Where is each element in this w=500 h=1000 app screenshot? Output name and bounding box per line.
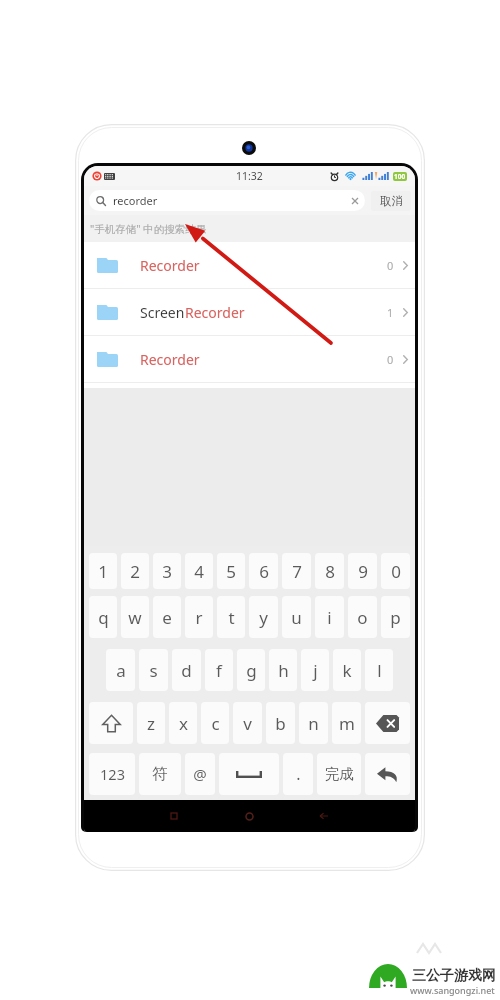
button[interactable]: y [249, 596, 278, 638]
button[interactable]: 符 [139, 753, 181, 795]
button[interactable]: @ [185, 753, 215, 795]
button[interactable]: Enter [365, 753, 410, 795]
button[interactable]: 6 [249, 553, 278, 589]
staticText: 符 [152, 764, 168, 784]
button[interactable]: 3 [153, 553, 181, 589]
button[interactable]: Recorder [84, 242, 415, 289]
button[interactable]: 1 [89, 553, 117, 589]
staticText: g [246, 659, 257, 682]
staticText: p [390, 606, 401, 629]
button[interactable]: Backspace [365, 702, 410, 744]
button[interactable]: b [266, 702, 295, 744]
staticText: y [259, 606, 268, 629]
staticText: 11:32 [236, 169, 263, 183]
button[interactable]: Clear search [348, 194, 361, 207]
button[interactable]: recorder [89, 190, 365, 211]
staticText: n [308, 712, 319, 735]
staticText: u [291, 606, 302, 629]
button[interactable]: Home [236, 803, 262, 829]
staticText: 取消 [380, 194, 403, 208]
button[interactable]: 完成 [317, 753, 361, 795]
button[interactable]: l [365, 649, 393, 691]
staticText: m [339, 712, 355, 735]
button[interactable]: s [139, 649, 168, 691]
button[interactable]: k [333, 649, 361, 691]
button[interactable]: q [89, 596, 117, 638]
button[interactable]: n [299, 702, 328, 744]
button[interactable]: Back [311, 803, 337, 829]
button[interactable]: a [106, 649, 135, 691]
button[interactable]: e [153, 596, 181, 638]
button[interactable]: 8 [315, 553, 344, 589]
staticText: x [179, 712, 188, 735]
staticText: 5 [226, 560, 236, 583]
button[interactable]: 2 [121, 553, 149, 589]
staticText: k [342, 659, 352, 682]
button[interactable]: v [233, 702, 262, 744]
button[interactable]: g [237, 649, 265, 691]
button[interactable]: 5 [217, 553, 245, 589]
staticText: 1 [98, 560, 108, 583]
staticText: 三公子游戏网 [412, 967, 496, 985]
button[interactable]: r [185, 596, 213, 638]
staticText: c [211, 712, 220, 735]
staticText: 7 [292, 560, 302, 583]
button[interactable]: 0 [381, 553, 410, 589]
staticText: h [278, 659, 289, 682]
button[interactable]: i [315, 596, 344, 638]
button[interactable]: h [269, 649, 297, 691]
button[interactable]: o [348, 596, 377, 638]
staticText: 100 [394, 172, 406, 181]
staticText: 0 [391, 560, 401, 583]
button[interactable]: . [283, 753, 313, 795]
button[interactable]: Screen [84, 289, 415, 336]
staticText: 0 [387, 258, 394, 273]
button[interactable]: u [282, 596, 311, 638]
button[interactable]: j [301, 649, 329, 691]
staticText: f [216, 659, 222, 682]
button[interactable]: Recent apps [161, 803, 187, 829]
button[interactable]: x [169, 702, 197, 744]
staticText: a [116, 659, 126, 682]
staticText: Recorder [185, 303, 245, 322]
staticText: recorder [113, 193, 158, 208]
staticText: v [243, 712, 252, 735]
button[interactable]: t [217, 596, 245, 638]
staticText: t [228, 606, 235, 629]
button[interactable]: 4 [185, 553, 213, 589]
button[interactable]: m [332, 702, 361, 744]
button[interactable]: f [205, 649, 233, 691]
button[interactable]: c [201, 702, 229, 744]
button[interactable]: d [172, 649, 201, 691]
staticText: z [147, 712, 155, 735]
staticText: 6 [259, 560, 269, 583]
staticText: Recorder [140, 256, 200, 275]
staticText: 4 [194, 560, 204, 583]
staticText: i [327, 606, 332, 629]
staticText: www.sangongzi.net [410, 984, 495, 996]
button[interactable]: Shift [89, 702, 133, 744]
staticText: Recorder [140, 350, 200, 369]
staticText: e [162, 606, 172, 629]
button[interactable]: 123 [89, 753, 135, 795]
button[interactable]: 9 [348, 553, 377, 589]
button[interactable]: Space [219, 753, 279, 795]
staticText: 3 [162, 560, 172, 583]
button[interactable]: 取消 [371, 191, 411, 211]
staticText: d [181, 659, 192, 682]
staticText: Screen [140, 303, 185, 322]
staticText: 123 [100, 764, 125, 784]
button[interactable]: p [381, 596, 410, 638]
staticText: q [98, 606, 109, 629]
staticText: . [296, 763, 301, 785]
button[interactable]: w [121, 596, 149, 638]
staticText: 0 [387, 352, 394, 367]
staticText: r [195, 606, 203, 629]
staticText: w [128, 606, 142, 629]
button[interactable]: z [137, 702, 165, 744]
button[interactable]: Recorder [84, 336, 415, 383]
button[interactable]: 7 [282, 553, 311, 589]
staticText: @ [193, 764, 207, 784]
staticText: 完成 [325, 765, 354, 783]
staticText: 2 [130, 560, 140, 583]
